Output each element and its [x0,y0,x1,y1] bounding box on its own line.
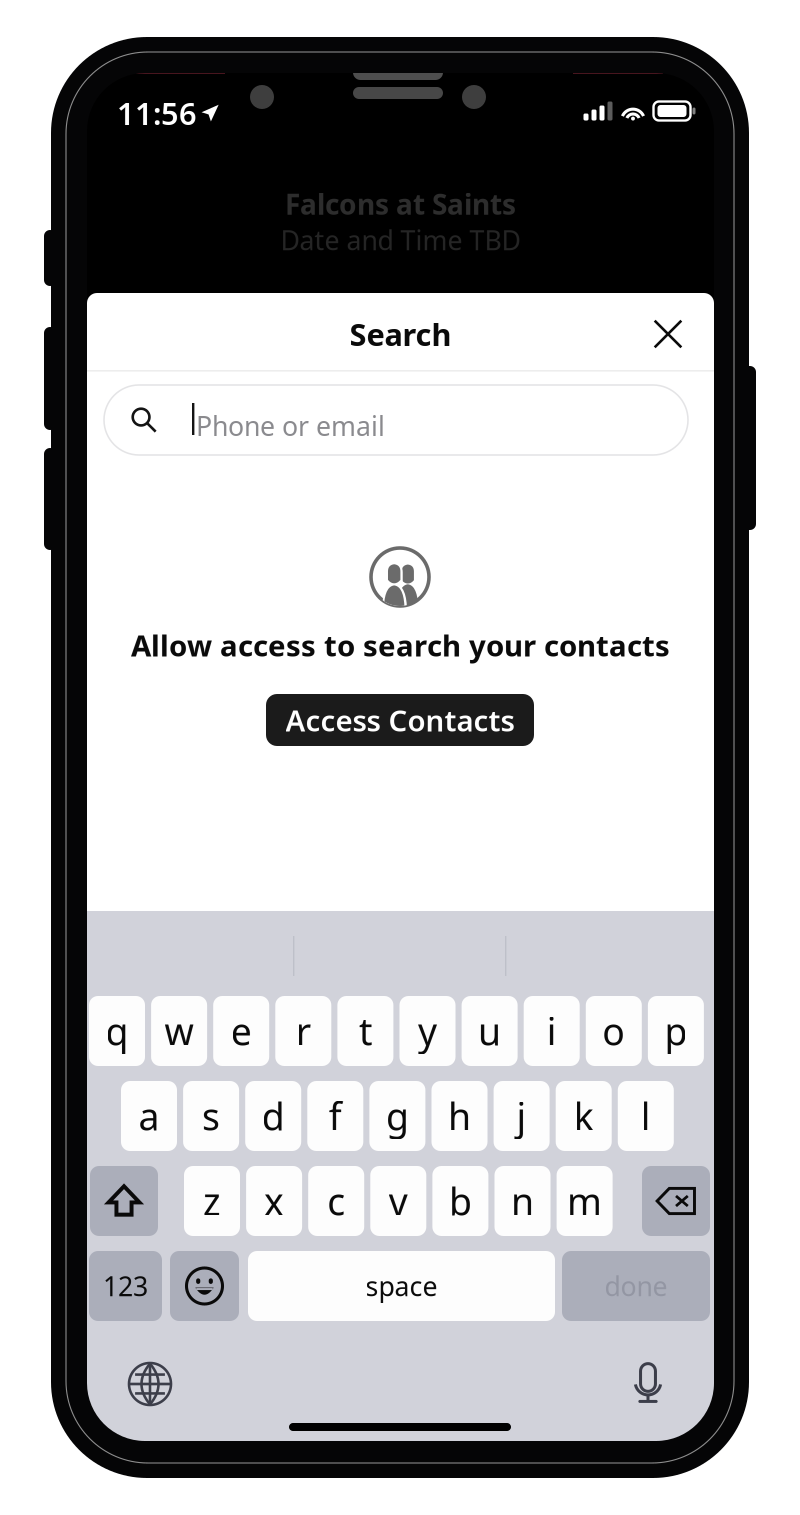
button[interactable]: n [494,1166,550,1236]
staticText: Falcons at Saints [285,185,516,223]
staticText: Phone or email [196,408,385,443]
button[interactable]: x [246,1166,302,1236]
button[interactable]: f [307,1081,363,1151]
staticText: i [547,1006,557,1056]
staticText: h [448,1091,471,1141]
staticText: n [511,1176,534,1226]
staticText: j [517,1091,527,1141]
staticText: y [418,1006,437,1056]
staticText: s [202,1091,220,1141]
staticText: u [478,1006,501,1056]
button[interactable]: p [648,996,704,1066]
staticText: r [296,1006,311,1056]
staticText: space [365,1268,437,1304]
button[interactable]: z [184,1166,240,1236]
button[interactable]: 123 [89,1251,162,1321]
button[interactable]: u [462,996,518,1066]
button[interactable]: g [369,1081,425,1151]
staticText: b [449,1176,472,1226]
button[interactable]: a [121,1081,177,1151]
button[interactable]: m [557,1166,613,1236]
staticText: d [262,1091,285,1141]
button[interactable]: q [89,996,145,1066]
staticText: 123 [103,1268,148,1304]
staticText: 11:56 [117,93,197,133]
button[interactable]: j [494,1081,550,1151]
button[interactable]: Delete [642,1166,710,1236]
staticText: l [641,1091,651,1141]
button[interactable]: Shift [90,1166,158,1236]
staticText: done [604,1268,667,1304]
button[interactable]: t [337,996,393,1066]
staticText: v [389,1176,408,1226]
staticText: g [386,1091,409,1141]
button[interactable]: c [308,1166,364,1236]
staticText: Allow access to search your contacts [131,625,670,664]
button[interactable]: h [431,1081,487,1151]
button[interactable]: Close [646,312,690,356]
button[interactable]: Emoji [170,1251,239,1321]
staticText: Search [349,314,451,354]
staticText: c [327,1176,345,1226]
staticText: x [264,1176,284,1226]
button[interactable]: Access Contacts [266,694,534,746]
button[interactable]: Change keyboard [127,1361,173,1407]
staticText: t [359,1006,372,1056]
staticText: p [664,1006,687,1056]
staticText: o [602,1006,625,1056]
button[interactable]: b [432,1166,488,1236]
button[interactable]: space [248,1251,555,1321]
staticText: z [203,1176,221,1226]
button[interactable]: o [586,996,642,1066]
button[interactable]: y [399,996,455,1066]
staticText: m [567,1176,602,1226]
button[interactable]: v [370,1166,426,1236]
button[interactable]: s [183,1081,239,1151]
button[interactable]: r [275,996,331,1066]
staticText: k [574,1091,594,1141]
button[interactable]: l [618,1081,674,1151]
button[interactable]: w [151,996,207,1066]
button[interactable]: e [213,996,269,1066]
staticText: e [231,1006,252,1056]
staticText: a [138,1091,159,1141]
button[interactable]: d [245,1081,301,1151]
button[interactable]: i [524,996,580,1066]
button[interactable]: done [562,1251,710,1321]
staticText: Date and Time TBD [280,222,520,258]
button[interactable]: Dictate [625,1361,671,1407]
staticText: q [105,1006,128,1056]
staticText: Access Contacts [285,700,514,739]
staticText: w [165,1006,194,1056]
staticText: f [329,1091,342,1141]
button[interactable]: k [556,1081,612,1151]
